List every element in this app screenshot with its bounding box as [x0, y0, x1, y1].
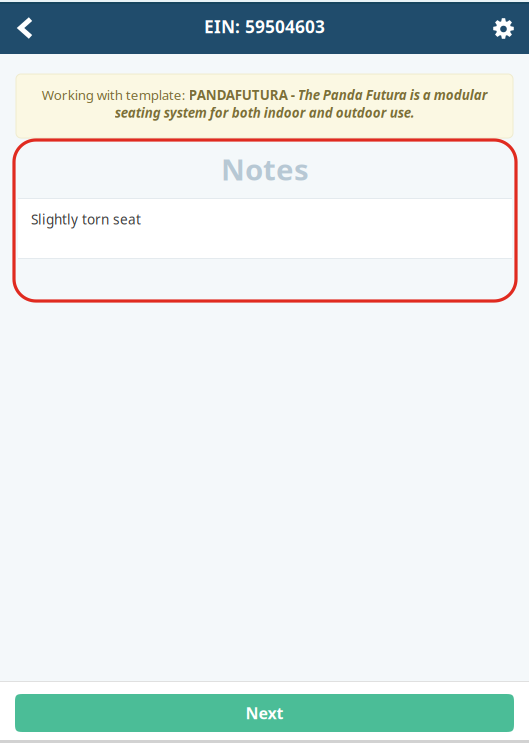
staticText: Notes	[221, 149, 309, 188]
button[interactable]: Settings	[478, 4, 529, 54]
staticText: Slightly torn seat	[31, 210, 141, 228]
button[interactable]: Back	[0, 4, 51, 54]
staticText: Next	[245, 702, 283, 724]
staticText: Working with template: PANDAFUTURA - The…	[41, 86, 487, 121]
button[interactable]: Next	[15, 694, 514, 732]
staticText: EIN: 59504603	[204, 15, 325, 38]
